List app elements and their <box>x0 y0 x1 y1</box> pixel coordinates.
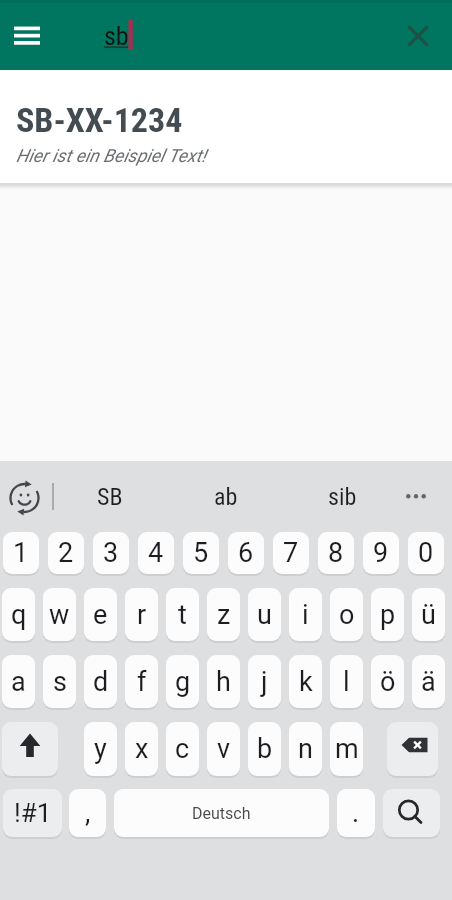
button[interactable]: 8 <box>318 532 354 574</box>
staticText: 1 <box>13 537 29 569</box>
button[interactable]: s <box>43 655 76 708</box>
button[interactable]: ab <box>158 472 294 522</box>
staticText: f <box>137 666 147 698</box>
staticText: r <box>137 599 147 631</box>
button[interactable]: z <box>207 588 240 641</box>
button[interactable] <box>2 722 58 776</box>
button[interactable] <box>398 471 442 521</box>
staticText: 0 <box>418 537 434 569</box>
staticText: a <box>11 666 26 698</box>
button[interactable]: r <box>125 588 158 641</box>
staticText: v <box>217 733 231 765</box>
staticText: c <box>175 733 190 765</box>
staticText: , <box>85 797 91 829</box>
staticText: . <box>352 797 360 829</box>
button[interactable]: b <box>248 722 281 776</box>
staticText: 6 <box>238 537 254 569</box>
button[interactable]: 3 <box>93 532 129 574</box>
staticText: y <box>94 733 107 765</box>
button[interactable]: SB <box>62 472 158 522</box>
button[interactable]: Deutsch <box>114 789 329 837</box>
button[interactable]: x <box>125 722 158 776</box>
staticText: 7 <box>283 537 299 569</box>
staticText: n <box>298 733 313 765</box>
button[interactable]: e <box>84 588 117 641</box>
button[interactable] <box>1 473 49 521</box>
button[interactable]: 0 <box>408 532 444 574</box>
staticText: o <box>339 599 355 631</box>
button[interactable]: 6 <box>228 532 264 574</box>
button[interactable]: n <box>289 722 322 776</box>
staticText: 5 <box>193 537 209 569</box>
button[interactable]: 5 <box>183 532 219 574</box>
button[interactable]: 2 <box>48 532 84 574</box>
staticText: ö <box>380 666 396 698</box>
staticText: d <box>93 666 109 698</box>
staticText: z <box>217 599 231 631</box>
staticText: m <box>335 733 359 765</box>
staticText: ab <box>214 483 238 511</box>
button[interactable]: d <box>84 655 117 708</box>
button[interactable] <box>3 11 51 59</box>
button[interactable]: j <box>248 655 281 708</box>
button[interactable]: m <box>330 722 363 776</box>
staticText: k <box>299 666 313 698</box>
button[interactable]: i <box>289 588 322 641</box>
button[interactable]: w <box>43 588 76 641</box>
staticText: l <box>343 666 350 698</box>
button[interactable]: 1 <box>3 532 39 574</box>
button[interactable]: v <box>207 722 240 776</box>
staticText: b <box>257 733 273 765</box>
staticText: 3 <box>103 537 119 569</box>
button[interactable]: a <box>2 655 35 708</box>
staticText: p <box>380 599 396 631</box>
button[interactable] <box>394 11 442 59</box>
button[interactable]: o <box>330 588 363 641</box>
staticText: e <box>93 599 108 631</box>
button[interactable]: u <box>248 588 281 641</box>
button[interactable]: c <box>166 722 199 776</box>
staticText: sib <box>328 483 357 511</box>
button[interactable]: , <box>69 789 106 837</box>
button[interactable]: g <box>166 655 199 708</box>
staticText: h <box>216 666 231 698</box>
button[interactable]: t <box>166 588 199 641</box>
button[interactable]: y <box>84 722 117 776</box>
button[interactable]: p <box>371 588 404 641</box>
staticText: Deutsch <box>192 804 251 823</box>
staticText: x <box>135 733 149 765</box>
button[interactable]: SB-XX-1234 <box>0 70 452 183</box>
staticText: s <box>53 666 67 698</box>
staticText: SB <box>97 483 123 511</box>
staticText: u <box>257 599 272 631</box>
staticText: q <box>11 599 27 631</box>
staticText: t <box>178 599 187 631</box>
button[interactable]: . <box>337 789 375 837</box>
staticText: SB-XX-1234 <box>16 100 183 140</box>
staticText: 8 <box>328 537 344 569</box>
button[interactable]: 9 <box>363 532 399 574</box>
button[interactable]: ä <box>412 655 445 708</box>
button[interactable]: q <box>2 588 35 641</box>
button[interactable] <box>387 722 438 776</box>
staticText: Hier ist ein Beispiel Text! <box>16 145 206 166</box>
staticText: 9 <box>373 537 389 569</box>
staticText: w <box>49 599 70 631</box>
button[interactable]: ü <box>412 588 445 641</box>
button[interactable]: f <box>125 655 158 708</box>
button[interactable]: ö <box>371 655 404 708</box>
button[interactable]: !#1 <box>3 789 62 837</box>
staticText: g <box>175 666 191 698</box>
button[interactable]: sib <box>294 472 390 522</box>
button[interactable] <box>383 789 440 837</box>
staticText: !#1 <box>14 798 52 828</box>
button[interactable]: h <box>207 655 240 708</box>
staticText: sb <box>104 21 129 51</box>
button[interactable]: k <box>289 655 322 708</box>
staticText: i <box>302 599 309 631</box>
staticText: 2 <box>58 537 74 569</box>
button[interactable]: 7 <box>273 532 309 574</box>
button[interactable]: 4 <box>138 532 174 574</box>
button[interactable]: l <box>330 655 363 708</box>
staticText: j <box>261 666 268 698</box>
